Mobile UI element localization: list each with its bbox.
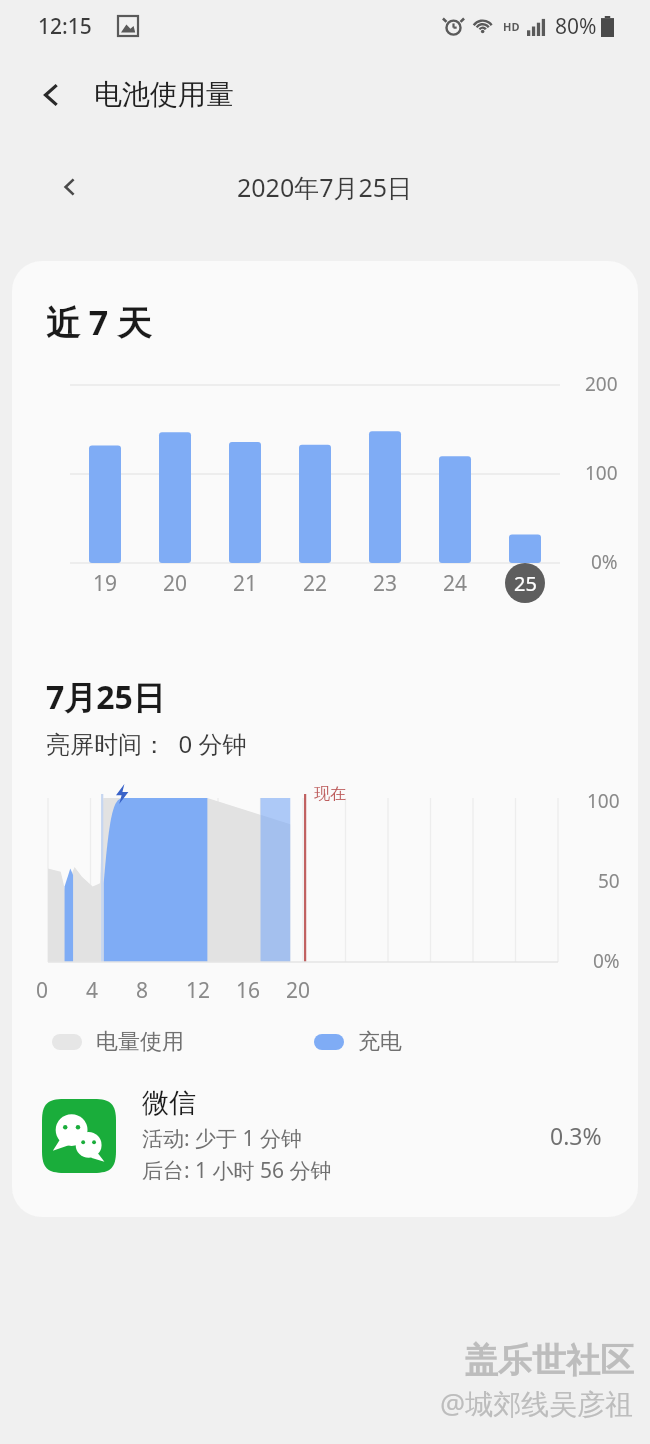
staticText: 后台: 1 小时 56 分钟 xyxy=(142,1156,332,1185)
staticText: 16 xyxy=(236,976,261,1005)
staticText: 20 xyxy=(163,569,188,598)
staticText: 0 xyxy=(36,976,49,1005)
staticText: 活动: 少于 1 分钟 xyxy=(142,1124,303,1153)
staticText: 亮屏时间： 0 分钟 xyxy=(46,727,247,760)
staticText: 0% xyxy=(593,948,620,974)
staticText: 4 xyxy=(86,976,99,1005)
staticText: 20 xyxy=(286,976,311,1005)
staticText: 2020年7月25日 xyxy=(237,170,413,204)
staticText: 0% xyxy=(591,549,618,575)
staticText: 23 xyxy=(373,569,398,598)
staticText: 盖乐世社区 xyxy=(464,1339,634,1382)
button[interactable]: Back xyxy=(26,69,78,121)
staticText: 8 xyxy=(136,976,149,1005)
staticText: 24 xyxy=(443,569,468,598)
staticText: 7月25日 xyxy=(46,675,165,719)
staticText: 21 xyxy=(233,569,258,598)
staticText: 近 7 天 xyxy=(46,299,152,345)
staticText: @城郊线吴彦祖 xyxy=(440,1384,634,1422)
staticText: 80% xyxy=(555,12,597,41)
button[interactable]: 电量使用 xyxy=(52,1028,184,1056)
button[interactable]: 微信 xyxy=(12,1080,638,1191)
button[interactable]: 充电 xyxy=(314,1028,402,1056)
button[interactable]: Previous day xyxy=(46,163,94,211)
staticText: 充电 xyxy=(358,1028,402,1056)
staticText: 12 xyxy=(186,976,211,1005)
button[interactable]: 25 xyxy=(490,561,560,605)
button[interactable]: 22 xyxy=(280,561,350,605)
staticText: 22 xyxy=(303,569,328,598)
staticText: 100 xyxy=(587,788,620,814)
button[interactable]: 24 xyxy=(420,561,490,605)
staticText: 200 xyxy=(585,371,618,397)
button[interactable]: 23 xyxy=(350,561,420,605)
staticText: 微信 xyxy=(142,1086,196,1120)
staticText: 12:15 xyxy=(38,12,92,41)
staticText: 50 xyxy=(598,868,620,894)
button[interactable]: 21 xyxy=(210,561,280,605)
staticText: 25 xyxy=(514,570,537,597)
staticText: HD xyxy=(503,19,520,34)
staticText: 19 xyxy=(93,569,118,598)
button[interactable]: 20 xyxy=(140,561,210,605)
staticText: 电量使用 xyxy=(96,1028,184,1056)
button[interactable]: 19 xyxy=(70,561,140,605)
staticText: 0.3% xyxy=(550,1120,602,1151)
staticText: 电池使用量 xyxy=(94,77,234,112)
staticText: 现在 xyxy=(314,784,346,804)
staticText: 100 xyxy=(585,460,618,486)
